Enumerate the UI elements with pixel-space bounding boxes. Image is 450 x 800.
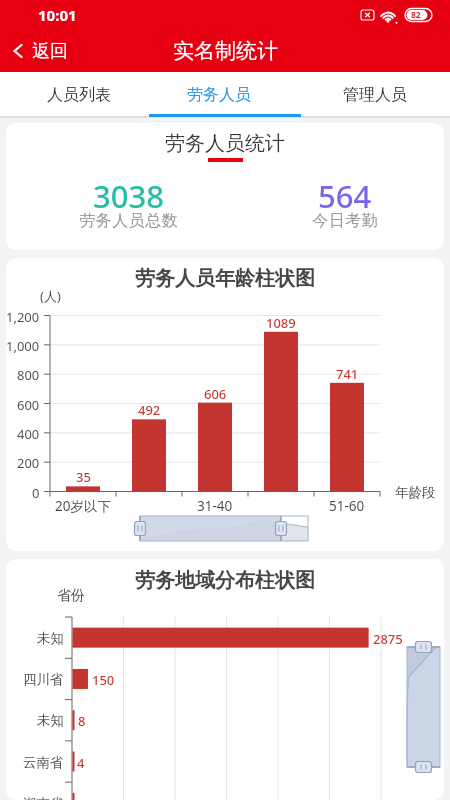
staticText: 741 xyxy=(336,365,359,381)
staticText: 0 xyxy=(32,484,40,500)
staticText: 四川省 xyxy=(23,671,64,687)
staticText: 3038 xyxy=(93,175,164,213)
staticText: 51-60 xyxy=(329,497,365,513)
staticText: 人员列表 xyxy=(47,85,111,105)
staticText: 实名制统计 xyxy=(173,38,278,64)
staticText: 返回 xyxy=(32,40,68,63)
staticText: 82 xyxy=(411,9,421,21)
staticText: 200 xyxy=(17,454,40,470)
button[interactable]: 管理人员 xyxy=(300,72,450,117)
staticText: 35 xyxy=(76,468,91,484)
staticText: 1,000 xyxy=(6,337,40,353)
staticText: 10:01 xyxy=(38,5,77,25)
button[interactable]: 返回 xyxy=(12,30,68,72)
staticText: 492 xyxy=(138,401,161,417)
staticText: 省份 xyxy=(57,587,85,603)
staticText: 湖南省 xyxy=(23,795,64,800)
staticText: 劳务人员年龄柱状图 xyxy=(135,266,315,290)
staticText: 劳务人员统计 xyxy=(165,131,285,155)
staticText: 云南省 xyxy=(23,754,64,770)
staticText: 2875 xyxy=(373,630,403,646)
staticText: 未知 xyxy=(37,630,64,646)
button[interactable]: 人员列表 xyxy=(0,72,150,117)
button[interactable]: 劳务人员 xyxy=(150,72,300,117)
staticText: 20岁以下 xyxy=(55,497,111,513)
button[interactable]: 564 xyxy=(239,171,444,243)
staticText: 800 xyxy=(17,366,40,382)
staticText: 1089 xyxy=(266,314,296,330)
staticText: 600 xyxy=(17,396,40,412)
staticText: 未知 xyxy=(37,712,64,728)
staticText: 劳务人员总数 xyxy=(79,211,178,231)
staticText: 564 xyxy=(318,175,372,213)
staticText: 劳务人员 xyxy=(187,85,251,105)
staticText: 606 xyxy=(204,385,227,401)
staticText: 1,200 xyxy=(6,308,40,324)
staticText: 150 xyxy=(92,671,115,687)
staticText: 31-40 xyxy=(197,497,233,513)
staticText: 400 xyxy=(17,425,40,441)
staticText: 4 xyxy=(77,754,85,770)
staticText: (人) xyxy=(40,287,61,303)
staticText: 管理人员 xyxy=(343,85,407,105)
staticText: 年龄段 xyxy=(395,484,436,500)
staticText: 8 xyxy=(78,712,86,728)
button[interactable]: 3038 xyxy=(22,171,234,243)
staticText: 今日考勤 xyxy=(312,211,378,231)
staticText: 劳务地域分布柱状图 xyxy=(135,568,315,592)
